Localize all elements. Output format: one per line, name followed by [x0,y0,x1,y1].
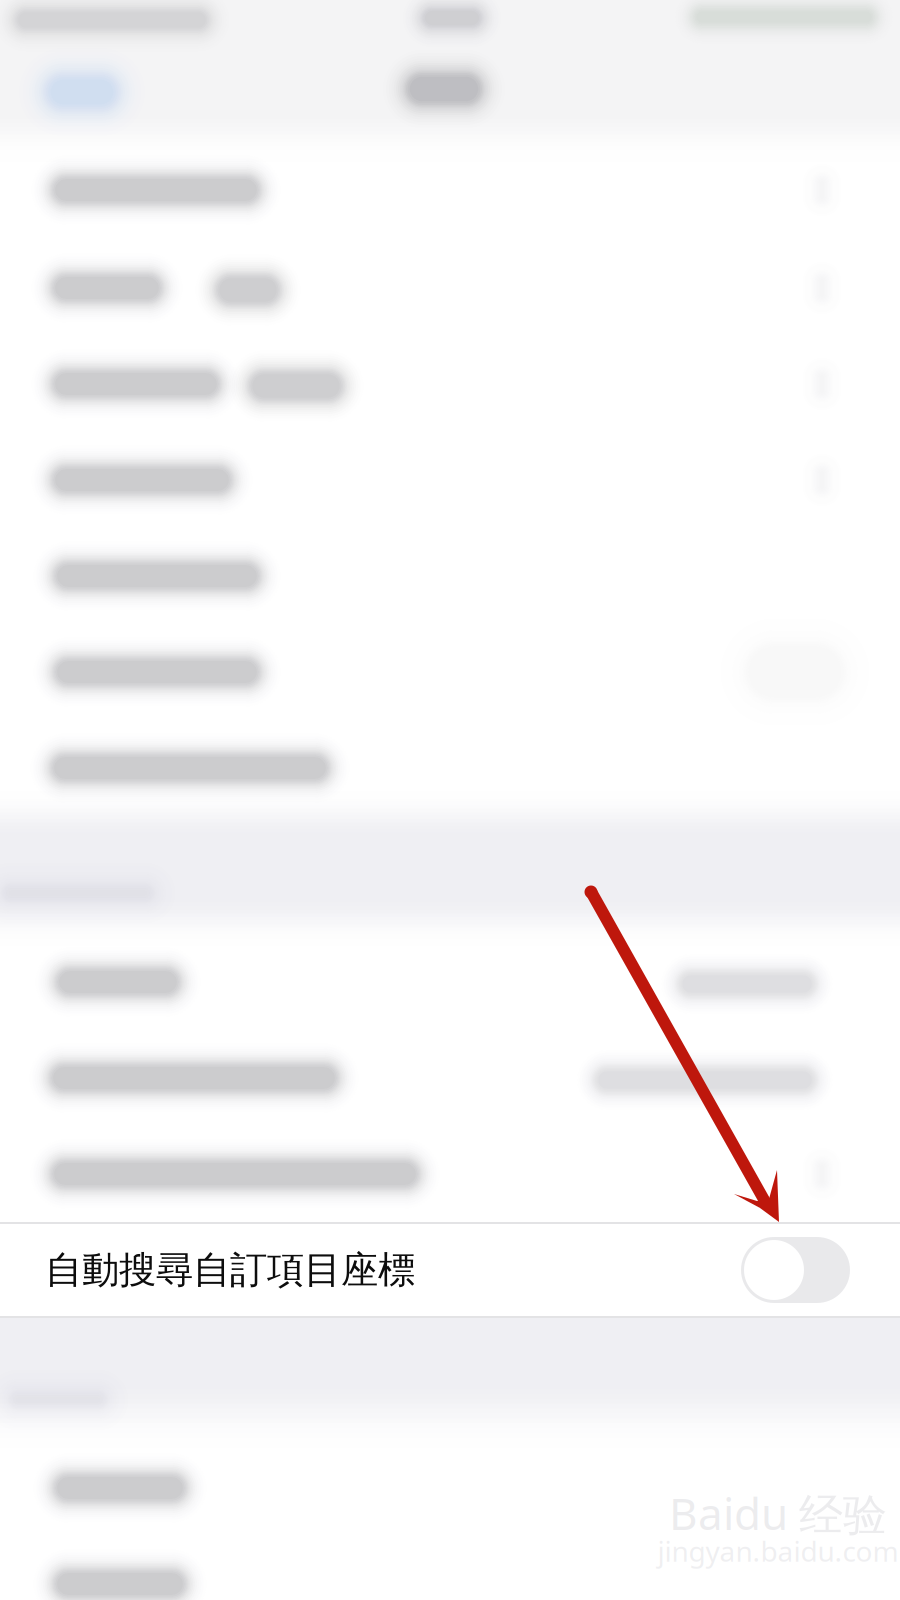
button[interactable]: 自動搜尋自訂項目座標 [0,1222,900,1318]
staticText: jingyan.baidu.com [657,1532,898,1570]
staticText: Baidu 经验 [669,1484,887,1542]
staticText: 自動搜尋自訂項目座標 [45,1247,415,1293]
